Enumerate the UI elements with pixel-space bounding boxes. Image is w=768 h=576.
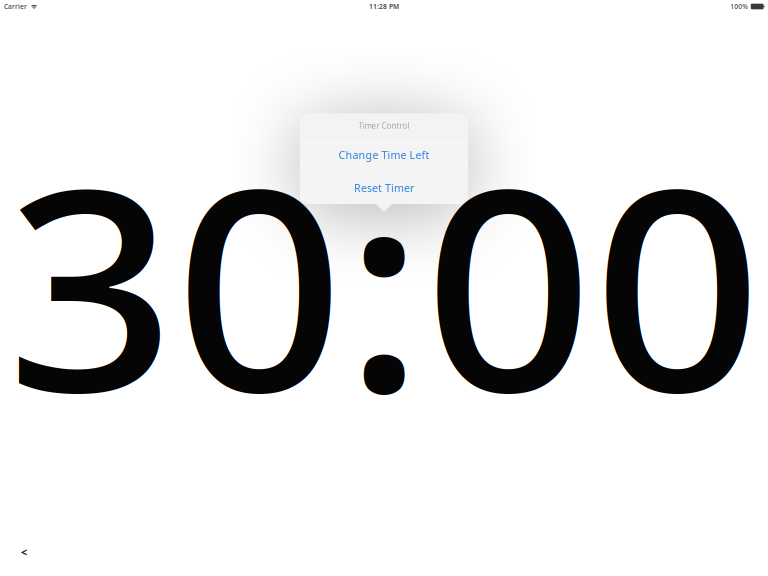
staticText: Carrier	[4, 2, 27, 11]
staticText: Reset Timer	[354, 181, 414, 195]
staticText: <	[21, 545, 27, 559]
button[interactable]: Back	[17, 545, 31, 559]
button[interactable]: Change Time Left	[300, 138, 468, 171]
staticText: 100%	[730, 2, 748, 11]
button[interactable]: Reset Timer	[300, 171, 468, 204]
staticText: 11:28 PM	[369, 2, 399, 11]
staticText: Timer Control	[358, 120, 409, 131]
staticText: Change Time Left	[338, 148, 429, 162]
staticText: 30:00	[26, 97, 742, 469]
